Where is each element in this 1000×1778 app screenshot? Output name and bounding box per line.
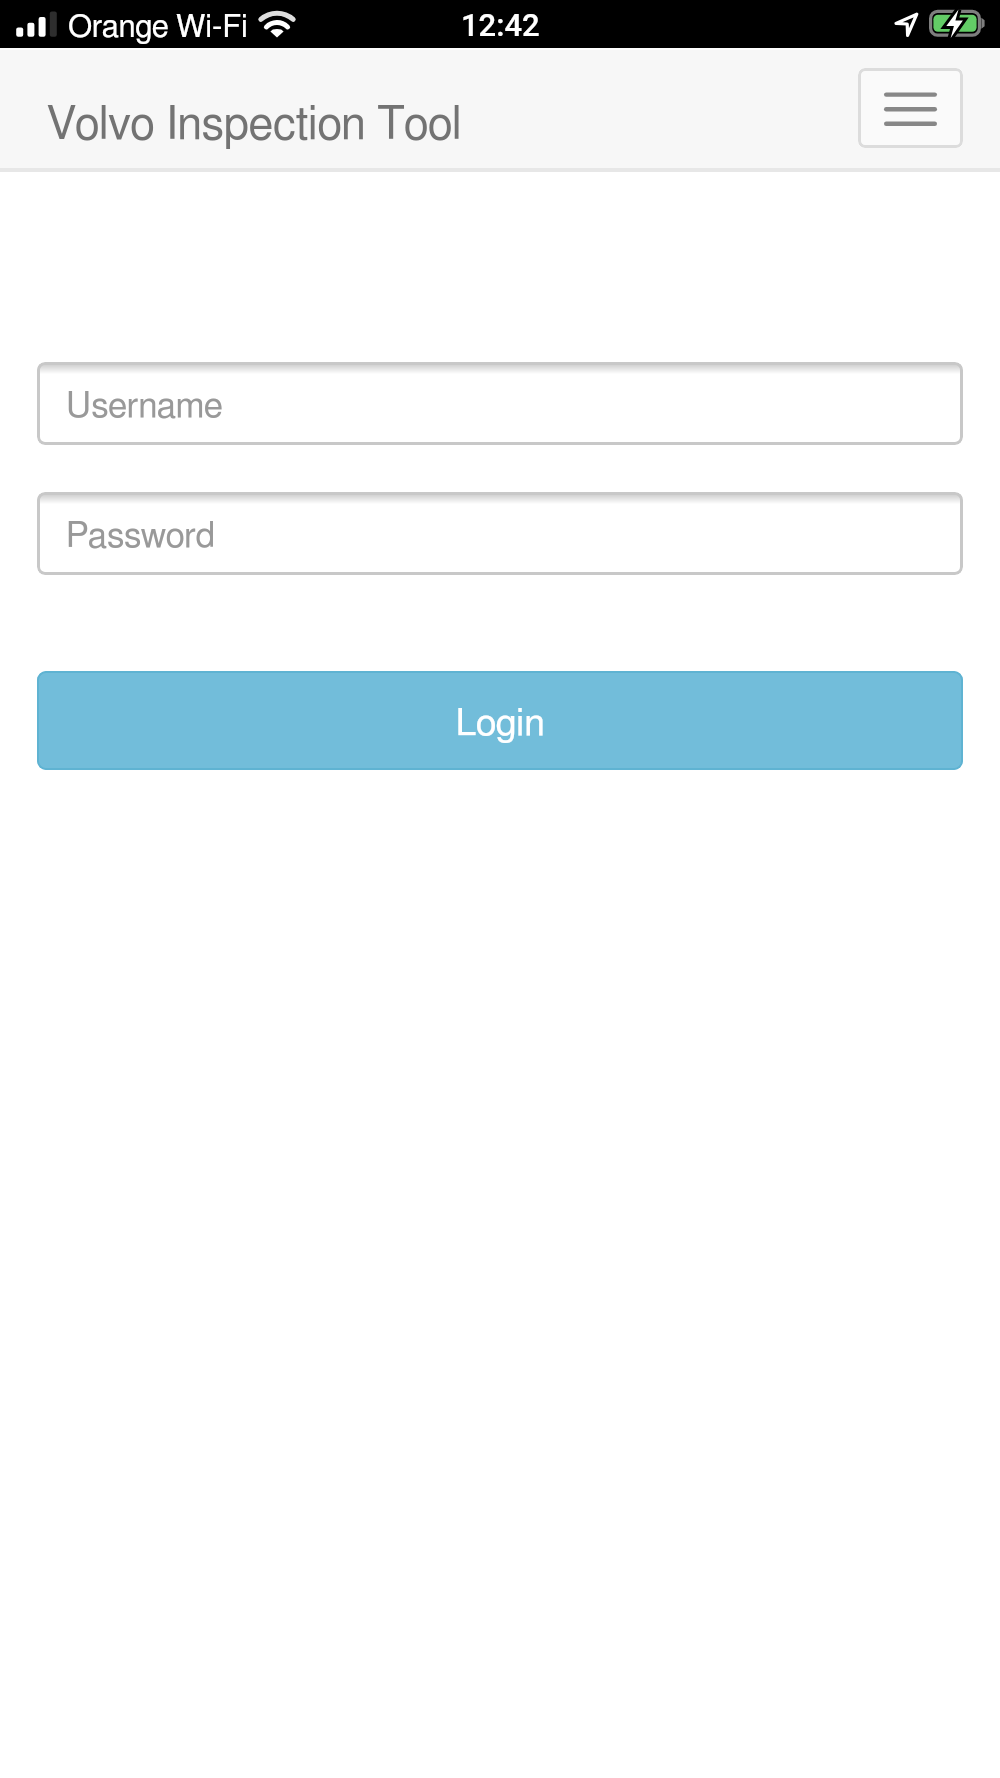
staticText: Password	[66, 519, 216, 554]
staticText: 12:42	[461, 7, 540, 43]
staticText: Orange Wi-Fi	[68, 12, 248, 43]
button[interactable]: Login	[37, 671, 963, 770]
staticText: Volvo Inspection Tool	[47, 103, 462, 148]
button[interactable]: Password	[37, 492, 963, 575]
staticText: Username	[66, 389, 223, 424]
button[interactable]: Username	[37, 362, 963, 445]
staticText: Login	[455, 705, 545, 743]
button[interactable]: Open menu	[858, 68, 963, 148]
